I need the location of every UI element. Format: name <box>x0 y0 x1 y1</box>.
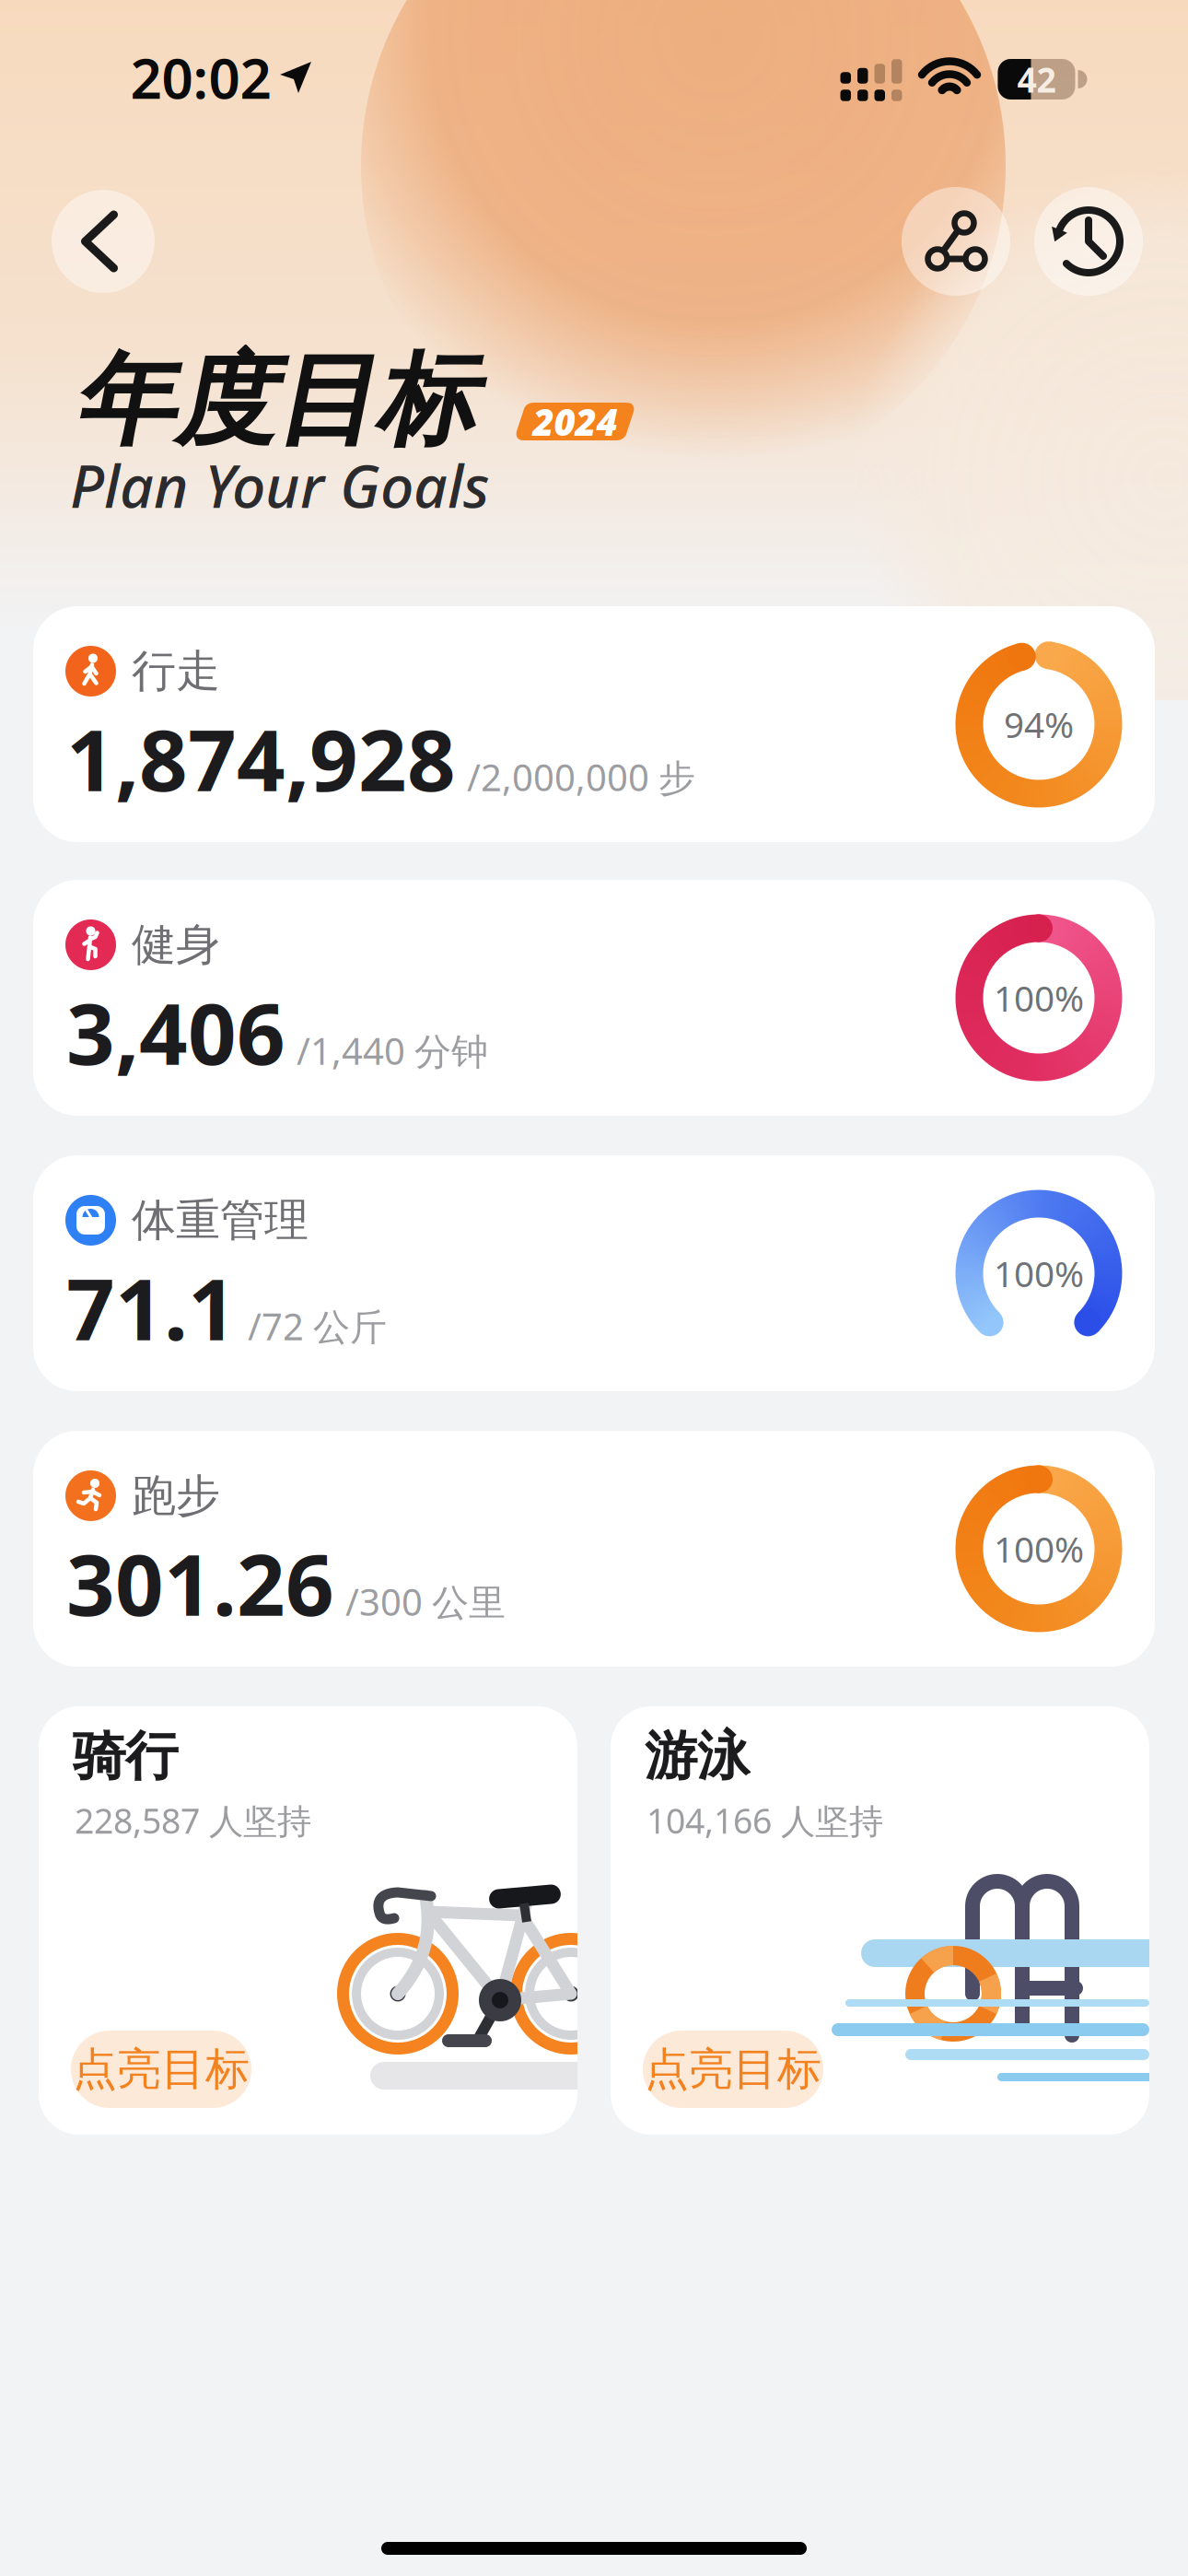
button[interactable]: 健身 <box>33 880 1155 1116</box>
button[interactable]: History <box>1034 187 1143 296</box>
button[interactable]: 跑步 <box>33 1431 1155 1667</box>
staticText: 228,587 人坚持 <box>75 1797 311 1843</box>
staticText: /2,000,000 步 <box>467 752 695 801</box>
staticText: /300 公里 <box>345 1577 506 1626</box>
button[interactable]: 点亮目标 <box>71 2031 251 2108</box>
staticText: 年度目标 <box>74 339 475 463</box>
staticText: 跑步 <box>132 1469 220 1523</box>
staticText: 健身 <box>132 918 220 972</box>
button[interactable]: Back <box>52 190 155 293</box>
staticText: 94% <box>1004 700 1074 748</box>
button[interactable]: Share route <box>902 187 1010 296</box>
staticText: 100% <box>994 1525 1084 1572</box>
staticText: 100% <box>994 1250 1084 1297</box>
staticText: 42 <box>1017 56 1056 102</box>
staticText: 100% <box>994 974 1084 1021</box>
staticText: 1,874,928 <box>66 702 456 815</box>
button[interactable]: 点亮目标 <box>643 2031 823 2108</box>
button[interactable]: 游泳 <box>611 1706 1149 2135</box>
staticText: 点亮目标 <box>645 2042 821 2096</box>
button[interactable]: 骑行 <box>39 1706 577 2135</box>
button[interactable]: 行走 <box>33 606 1155 842</box>
staticText: Plan Your Goals <box>70 446 489 524</box>
button[interactable]: 体重管理 <box>33 1155 1155 1391</box>
staticText: /72 公斤 <box>248 1302 387 1350</box>
staticText: 301.26 <box>66 1527 334 1639</box>
staticText: 行走 <box>132 644 220 698</box>
staticText: 2024 <box>533 397 617 446</box>
staticText: 点亮目标 <box>73 2042 250 2096</box>
staticText: 3,406 <box>66 976 285 1088</box>
staticText: 104,166 人坚持 <box>646 1797 883 1843</box>
staticText: 游泳 <box>645 1724 750 1789</box>
staticText: 体重管理 <box>132 1193 309 1247</box>
staticText: /1,440 分钟 <box>297 1026 488 1075</box>
staticText: 20:02 <box>130 41 271 114</box>
staticText: 71.1 <box>66 1251 237 1364</box>
staticText: 骑行 <box>73 1724 178 1789</box>
